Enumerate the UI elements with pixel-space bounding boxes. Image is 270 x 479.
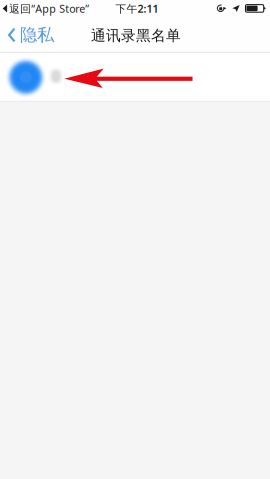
staticText: 隐私 (20, 24, 54, 46)
button[interactable]: 通讯录黑名单联系人 (0, 0, 270, 101)
staticText: 返回“App Store” (9, 1, 89, 16)
staticText: 下午2:11 (115, 1, 158, 16)
staticText: 通讯录黑名单 (91, 27, 181, 45)
button[interactable]: 返回“App Store” (3, 1, 89, 17)
button[interactable]: 隐私 (1, 18, 61, 52)
